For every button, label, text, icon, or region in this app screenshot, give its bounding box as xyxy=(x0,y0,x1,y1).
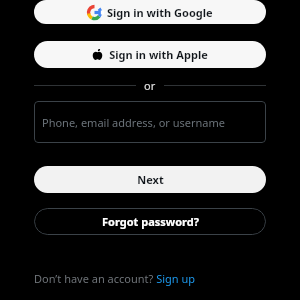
button[interactable]: Phone, email address, or username xyxy=(34,101,266,143)
staticText: Next xyxy=(137,172,164,187)
staticText: Forgot password? xyxy=(102,214,199,229)
button[interactable]: Sign in with Google xyxy=(34,0,266,24)
staticText: or xyxy=(144,78,156,93)
button[interactable]: Don’t have an account? Sign up xyxy=(34,271,196,286)
button[interactable]: Forgot password? xyxy=(34,208,266,235)
button[interactable]: Sign in with Apple xyxy=(34,41,266,68)
staticText: Sign in with Google xyxy=(107,5,213,20)
staticText: Don’t have an account? Sign up xyxy=(34,271,196,286)
button[interactable]: Next xyxy=(34,166,266,193)
staticText: Sign in with Apple xyxy=(109,47,208,62)
staticText: Phone, email address, or username xyxy=(42,115,226,130)
